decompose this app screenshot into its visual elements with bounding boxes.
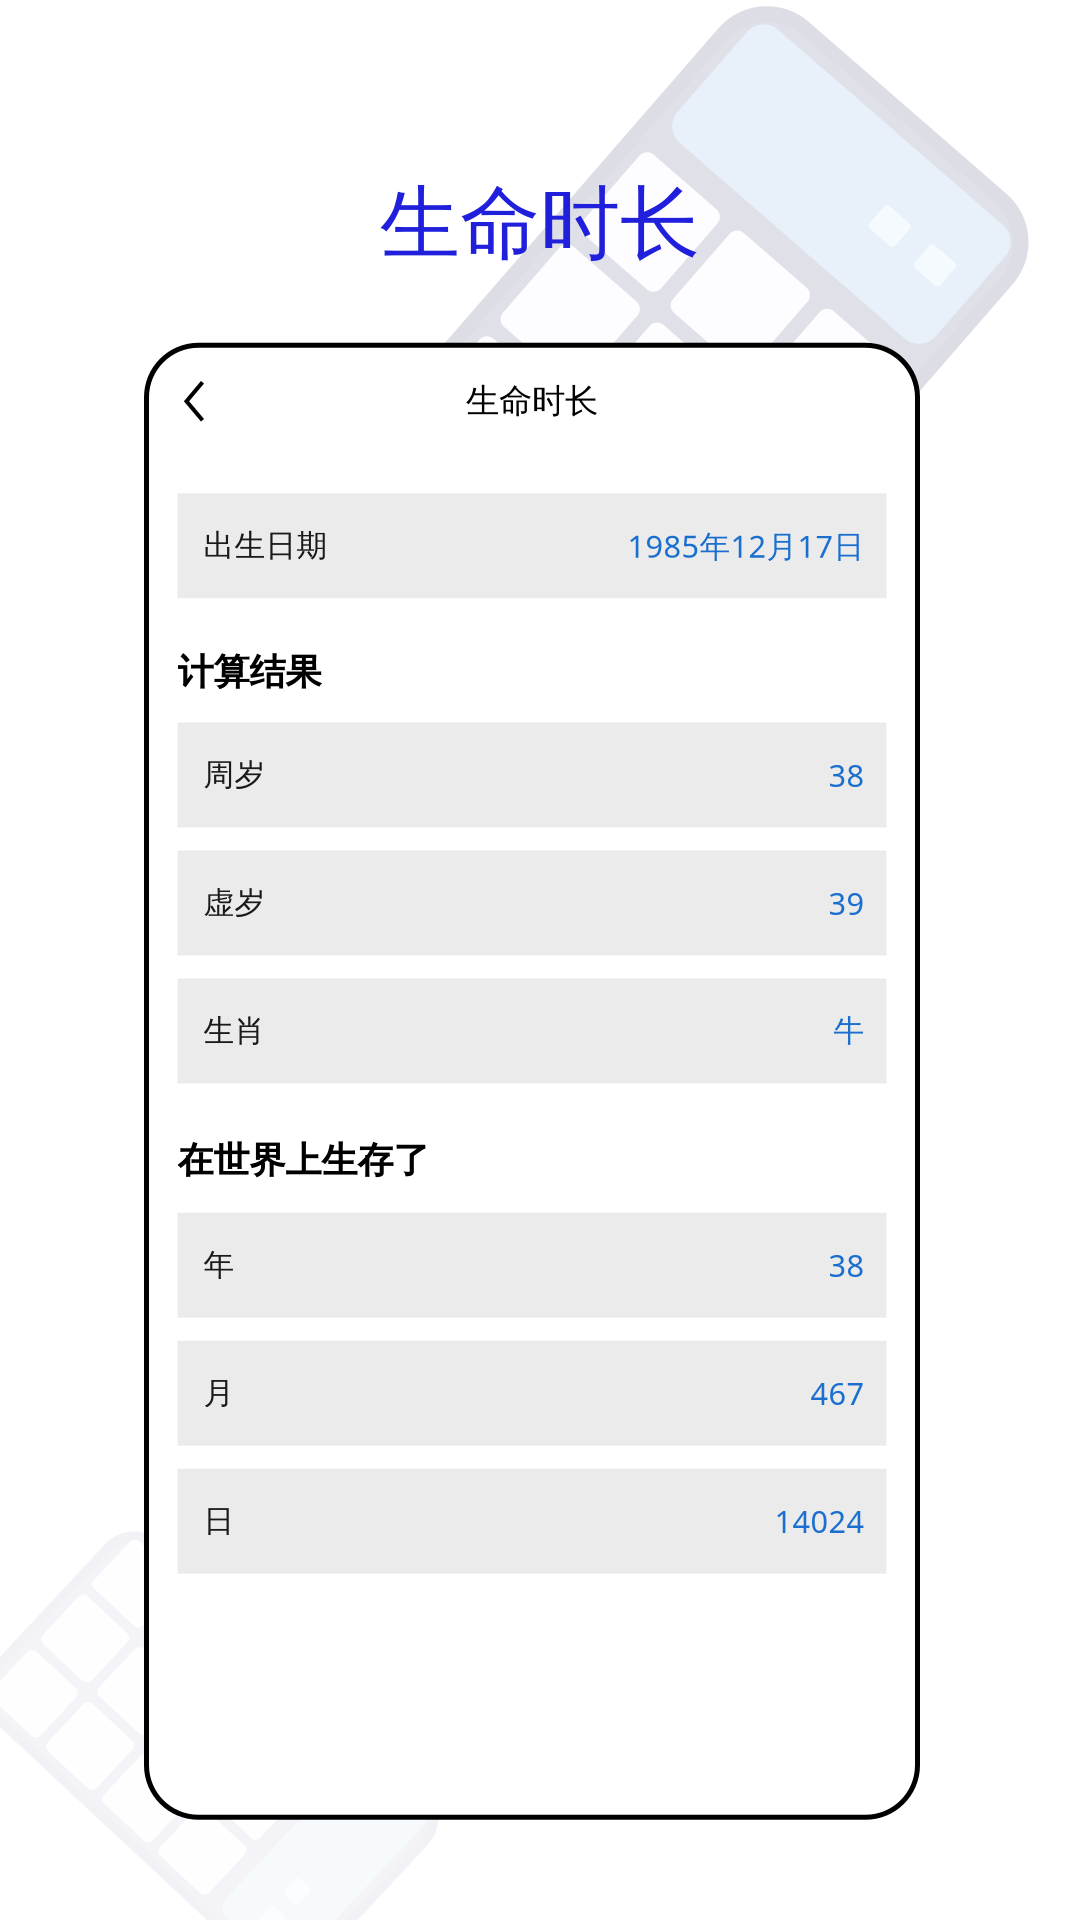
button[interactable]: 周岁 (177, 722, 886, 827)
staticText: 出生日期 (203, 527, 327, 565)
staticText: 38 (828, 1245, 864, 1285)
button[interactable]: 年 (177, 1213, 886, 1318)
button[interactable]: 月 (177, 1341, 886, 1446)
button[interactable]: Back (146, 362, 222, 440)
staticText: 467 (810, 1373, 864, 1413)
staticText: 38 (828, 755, 864, 795)
button[interactable]: 虚岁 (177, 850, 886, 955)
staticText: 日 (203, 1502, 234, 1540)
button[interactable]: 日 (177, 1469, 886, 1574)
staticText: 在世界上生存了 (177, 1138, 429, 1183)
staticText: 生命时长 (466, 381, 598, 422)
staticText: 周岁 (203, 756, 265, 794)
staticText: 年 (203, 1246, 234, 1284)
staticText: 1985年12月17日 (627, 525, 864, 566)
button[interactable]: 生肖 (177, 978, 886, 1083)
staticText: 14024 (774, 1501, 864, 1541)
staticText: 牛 (833, 1012, 864, 1050)
staticText: 生肖 (203, 1012, 265, 1050)
staticText: 生命时长 (380, 175, 700, 273)
staticText: 虚岁 (203, 884, 265, 922)
staticText: 计算结果 (177, 650, 321, 694)
staticText: 39 (828, 883, 864, 923)
button[interactable]: 出生日期 (177, 493, 886, 598)
staticText: 月 (203, 1374, 234, 1412)
